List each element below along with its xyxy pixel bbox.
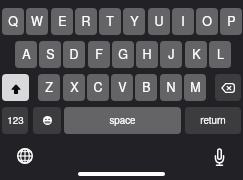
button[interactable]: Y [123, 8, 145, 35]
staticText: 123 [7, 113, 24, 127]
staticText: Y [130, 12, 139, 30]
button[interactable]: Voice input [214, 148, 225, 166]
button[interactable]: A [15, 41, 37, 68]
staticText: Q [8, 12, 18, 30]
staticText: O [202, 12, 212, 30]
staticText: F [95, 45, 103, 63]
button[interactable]: space [64, 107, 181, 134]
staticText: X [70, 78, 79, 96]
staticText: C [93, 78, 103, 96]
staticText: V [118, 78, 127, 96]
button[interactable]: Q [2, 8, 24, 35]
button[interactable]: W [26, 8, 48, 35]
staticText: W [31, 12, 43, 30]
button[interactable]: D [63, 41, 85, 68]
staticText: N [166, 78, 176, 96]
button[interactable]: P [220, 8, 242, 35]
staticText: P [227, 12, 236, 30]
staticText: R [81, 12, 91, 30]
button[interactable]: E [51, 8, 73, 35]
staticText: U [154, 12, 164, 30]
staticText: I [181, 12, 185, 30]
staticText: return [200, 113, 226, 127]
button[interactable]: M [184, 74, 206, 101]
staticText: J [168, 45, 175, 63]
button[interactable]: S [39, 41, 61, 68]
staticText: G [118, 45, 128, 63]
staticText: K [192, 45, 201, 63]
button[interactable]: Shift [2, 74, 29, 101]
button[interactable]: Z [38, 74, 60, 101]
button[interactable]: H [136, 41, 158, 68]
staticText: T [106, 12, 114, 30]
button[interactable]: C [87, 74, 109, 101]
staticText: space [109, 113, 136, 127]
staticText: L [217, 45, 224, 63]
button[interactable]: 123 [2, 107, 28, 134]
button[interactable]: L [209, 41, 231, 68]
staticText: B [142, 78, 151, 96]
button[interactable]: K [185, 41, 207, 68]
button[interactable]: R [75, 8, 97, 35]
staticText: Z [45, 78, 53, 96]
button[interactable]: O [196, 8, 218, 35]
staticText: H [142, 45, 152, 63]
staticText: S [46, 45, 55, 63]
button[interactable]: return [185, 107, 241, 134]
button[interactable]: Switch keyboard [17, 148, 33, 164]
button[interactable]: V [111, 74, 133, 101]
staticText: A [22, 45, 31, 63]
staticText: E [58, 12, 67, 30]
button[interactable]: T [99, 8, 121, 35]
button[interactable]: Emoji keyboard [33, 107, 61, 134]
button[interactable]: I [172, 8, 194, 35]
button[interactable]: U [148, 8, 170, 35]
button[interactable]: X [63, 74, 85, 101]
button[interactable]: Backspace [215, 74, 241, 101]
button[interactable]: J [160, 41, 182, 68]
button[interactable]: F [88, 41, 110, 68]
staticText: M [190, 78, 201, 96]
button[interactable]: G [112, 41, 134, 68]
staticText: D [69, 45, 79, 63]
button[interactable]: N [160, 74, 182, 101]
button[interactable]: B [135, 74, 157, 101]
